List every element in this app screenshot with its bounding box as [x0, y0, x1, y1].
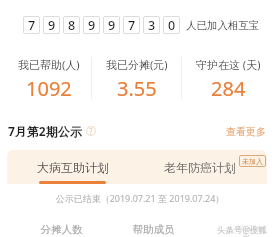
staticText: 3.55 [117, 75, 157, 99]
staticText: 284 [211, 75, 246, 99]
staticText: 8 [68, 17, 76, 34]
staticText: 老年防癌计划 [164, 160, 236, 175]
staticText: 未加入 [242, 157, 263, 166]
staticText: 9 [88, 17, 96, 34]
staticText: 人已加入相互宝 [186, 19, 260, 32]
staticText: 头条号@搜狐阳光 [213, 224, 267, 237]
staticText: 1092 [26, 75, 72, 99]
staticText: 我已分摊(元) [106, 57, 168, 72]
staticText: 9 [48, 17, 56, 34]
staticText: 我已帮助(人) [18, 57, 80, 72]
staticText: 公示已结束（2019.07.21 至 2019.07.24） [10, 192, 267, 204]
staticText: 9 [108, 17, 116, 34]
staticText: 查看更多 [226, 125, 266, 138]
staticText: 7 [28, 17, 36, 34]
staticText: 7 [128, 17, 136, 34]
staticText: 大病互助计划 [37, 160, 109, 175]
button[interactable]: 说明 [86, 126, 96, 136]
staticText: 帮助成员 [112, 223, 195, 236]
staticText: 分摊人数 [20, 223, 103, 236]
staticText: 3 [148, 17, 156, 34]
staticText: ? [89, 126, 93, 136]
button[interactable]: 查看更多 [226, 125, 266, 138]
staticText: 人均分摊 [205, 223, 267, 236]
staticText: 0 [168, 17, 176, 34]
staticText: 守护在这 (天) [196, 57, 261, 72]
button[interactable]: 大病互助计划 [7, 150, 137, 184]
button[interactable]: 老年防癌计划 [137, 150, 267, 184]
staticText: 7月第2期公示 [8, 123, 82, 139]
